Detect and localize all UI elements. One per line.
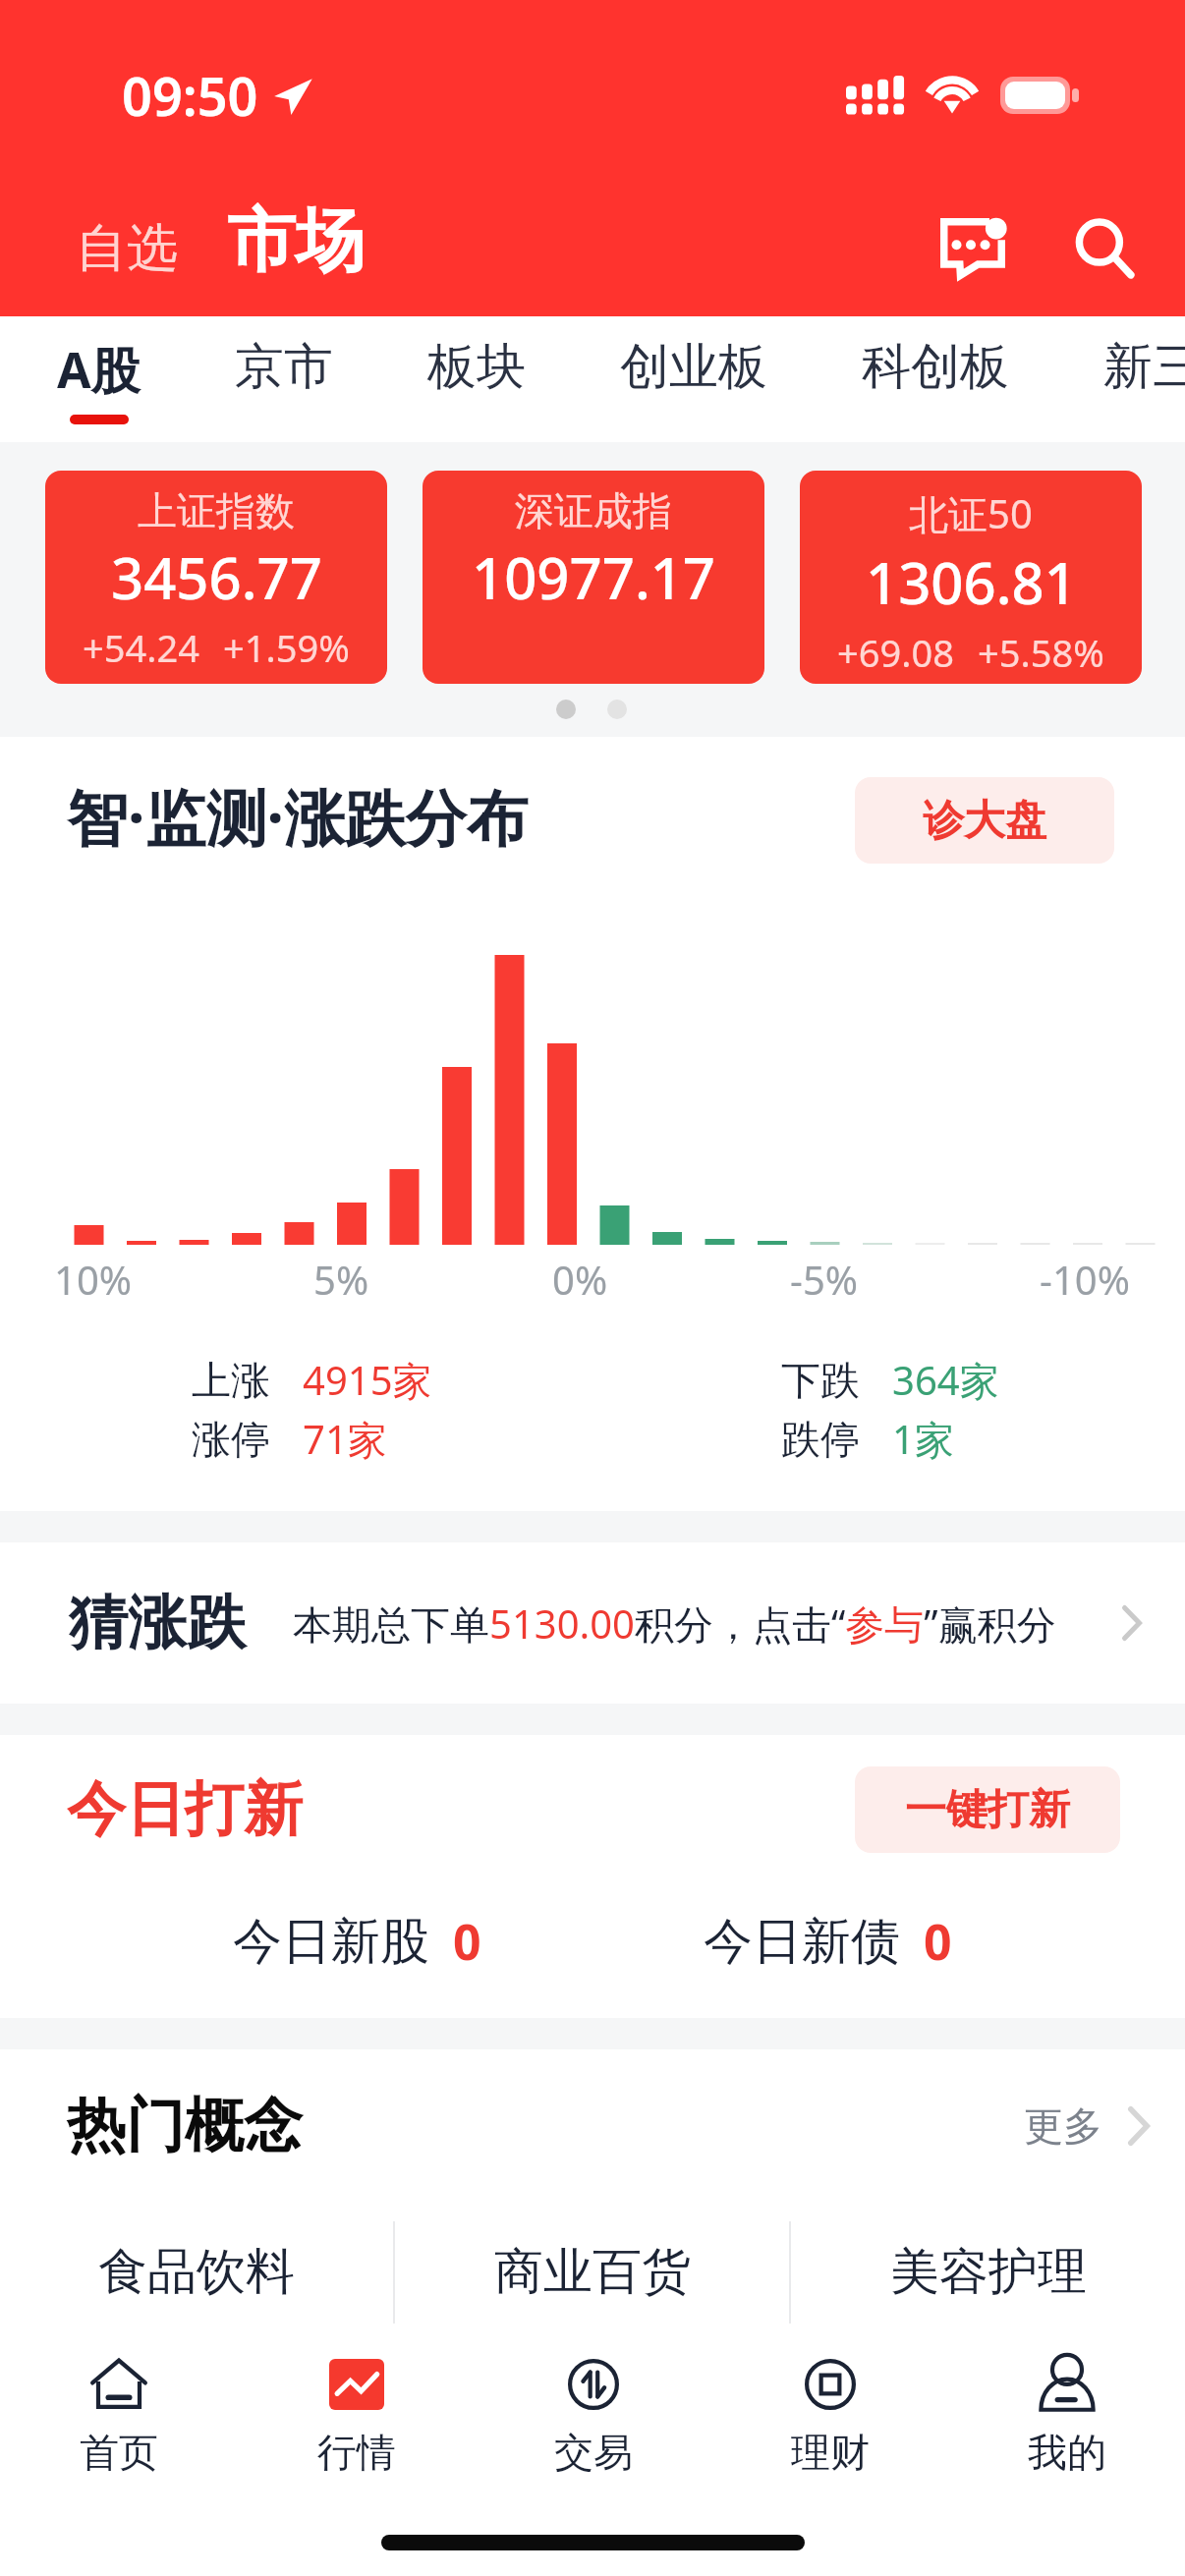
button[interactable]: 创业板 [620, 316, 767, 410]
button[interactable]: 新三 [1103, 316, 1185, 410]
button[interactable]: 自选 [70, 216, 184, 316]
staticText: A股 [57, 336, 141, 403]
staticText: +54.24 [83, 622, 199, 673]
staticText: -10% [1040, 1253, 1130, 1306]
button[interactable]: 猜涨跌 [0, 1542, 1185, 1704]
staticText: 科创板 [862, 336, 1009, 398]
staticText: 商业百货 [494, 2241, 691, 2303]
staticText: 猜涨跌 [69, 1586, 246, 1660]
button[interactable]: 理财 [711, 2334, 948, 2501]
staticText: 今日新债 [704, 1911, 900, 1973]
staticText: 自选 [76, 216, 178, 281]
staticText: 今日新股 [233, 1911, 429, 1973]
staticText: 上证指数 [138, 486, 295, 535]
staticText: 364家 [892, 1353, 999, 1407]
staticText: 智·监测·涨跌分布 [67, 775, 528, 859]
staticText: 创业板 [620, 336, 767, 398]
staticText: 首页 [80, 2428, 158, 2477]
button[interactable]: 下跌 [781, 1353, 999, 1407]
button[interactable]: 板块 [427, 316, 526, 410]
staticText: 今日打新 [67, 1772, 303, 1847]
staticText: 3456.77 [111, 538, 322, 616]
staticText: 市场 [227, 198, 365, 285]
button[interactable]: 智·监测·涨跌分布 [67, 775, 528, 864]
staticText: 1家 [892, 1412, 954, 1466]
button[interactable]: 今日新债 [704, 1908, 952, 1975]
staticText: +5.58% [978, 627, 1104, 678]
staticText: 理财 [791, 2428, 870, 2477]
staticText: +1.59% [223, 622, 350, 673]
button[interactable]: 交易 [475, 2334, 711, 2501]
button[interactable]: 一键打新 [855, 1766, 1120, 1853]
staticText: 1306.81 [866, 543, 1077, 621]
staticText: 食品饮料 [98, 2241, 295, 2303]
staticText: 北证50 [909, 486, 1033, 540]
staticText: 美容护理 [890, 2241, 1087, 2303]
button[interactable]: 食品饮料 [0, 2210, 393, 2334]
staticText: 交易 [554, 2428, 633, 2477]
button[interactable]: 深证成指 [423, 471, 764, 684]
staticText: 09:50 [122, 59, 258, 132]
button[interactable]: A股 [57, 316, 141, 424]
staticText: 跌停 [781, 1415, 860, 1464]
button[interactable]: Messages [928, 203, 1018, 294]
staticText: 下跌 [781, 1356, 860, 1405]
staticText: 71家 [303, 1412, 387, 1466]
staticText: 0% [552, 1253, 608, 1306]
staticText: 京市 [235, 336, 333, 398]
button[interactable]: 京市 [235, 316, 333, 410]
staticText: 0 [924, 1908, 952, 1975]
button[interactable]: 行情 [238, 2334, 475, 2501]
staticText: 本期总下单5130.00积分，点击“参与”赢积分 [293, 1596, 1056, 1651]
button[interactable]: Search [1059, 203, 1150, 294]
button[interactable]: 我的 [948, 2334, 1185, 2501]
button[interactable]: 市场 [221, 198, 370, 316]
staticText: 10% [54, 1253, 132, 1306]
button[interactable]: 首页 [0, 2334, 238, 2501]
staticText: 上涨 [192, 1356, 270, 1405]
staticText: 我的 [1028, 2428, 1106, 2477]
button[interactable]: 美容护理 [791, 2210, 1185, 2334]
staticText: 10977.17 [472, 538, 716, 616]
button[interactable]: 热门概念 [67, 2089, 303, 2163]
staticText: 热门概念 [67, 2089, 303, 2163]
button[interactable]: 诊大盘 [855, 777, 1114, 864]
button[interactable]: 跌停 [781, 1412, 954, 1466]
staticText: 诊大盘 [923, 795, 1046, 847]
button[interactable]: 上证指数 [45, 471, 387, 684]
staticText: 5% [313, 1253, 369, 1306]
staticText: 0 [453, 1908, 481, 1975]
button[interactable]: 商业百货 [395, 2210, 789, 2334]
staticText: 行情 [317, 2428, 396, 2477]
staticText: +69.08 [837, 627, 954, 678]
staticText: -5% [790, 1253, 858, 1306]
button[interactable]: 上涨 [192, 1353, 432, 1407]
button[interactable]: 今日新股 [233, 1908, 481, 1975]
staticText: 新三 [1103, 336, 1185, 398]
staticText: 涨停 [192, 1415, 270, 1464]
button[interactable]: 涨停 [192, 1412, 387, 1466]
staticText: 一键打新 [905, 1784, 1070, 1836]
button[interactable]: 更多 [1018, 2096, 1156, 2156]
staticText: 4915家 [303, 1353, 432, 1407]
staticText: 板块 [427, 336, 526, 398]
button[interactable]: 科创板 [862, 316, 1009, 410]
button[interactable]: 北证50 [800, 471, 1142, 684]
staticText: 更多 [1024, 2101, 1102, 2151]
staticText: 深证成指 [515, 486, 672, 535]
